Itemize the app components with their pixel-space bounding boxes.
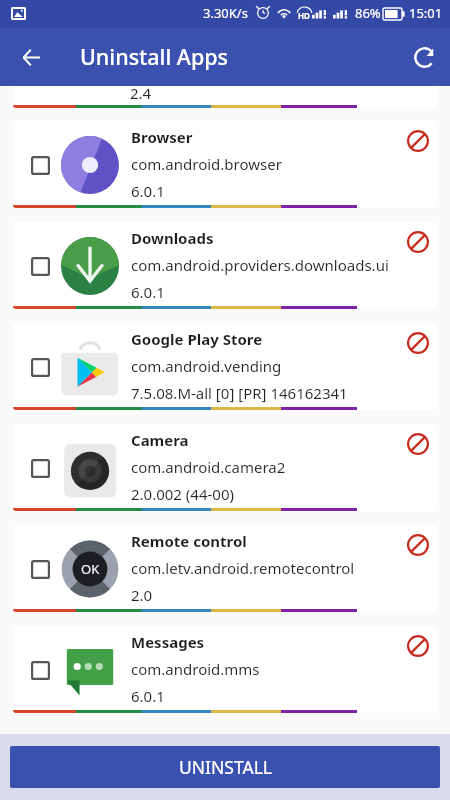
button[interactable]: Block Camera <box>400 426 436 462</box>
staticText: Messages <box>131 632 205 652</box>
staticText: 2.4 <box>130 86 152 103</box>
staticText: 2.0.002 (44-00) <box>131 484 234 504</box>
staticText: UNINSTALL <box>179 755 272 779</box>
staticText: Uninstall Apps <box>80 42 229 71</box>
button[interactable]: Back <box>11 37 51 77</box>
button[interactable]: Select Google Play Store <box>13 323 437 410</box>
staticText: 15:01 <box>409 4 443 22</box>
staticText: 6.0.1 <box>131 686 165 706</box>
button[interactable]: Select Browser <box>18 143 62 187</box>
button[interactable]: Select Downloads <box>13 222 437 309</box>
button[interactable]: Refresh <box>404 37 444 77</box>
staticText: HD <box>298 10 310 21</box>
staticText: 2.0 <box>131 585 153 605</box>
button[interactable]: Block Messages <box>400 628 436 664</box>
button[interactable]: Select Google Play Store <box>18 345 62 389</box>
button[interactable]: Block Browser <box>400 123 436 159</box>
button[interactable]: Block Downloads <box>400 224 436 260</box>
button[interactable]: Select Remote control <box>18 547 62 591</box>
button[interactable]: Block Google Play Store <box>400 325 436 361</box>
button[interactable]: Select Camera <box>18 446 62 490</box>
staticText: com.android.mms <box>131 659 260 679</box>
staticText: 86% <box>355 4 381 22</box>
staticText: 3.30K/s <box>203 4 248 22</box>
staticText: com.android.browser <box>131 154 282 174</box>
staticText: Remote control <box>131 531 247 551</box>
button[interactable]: 2.4 <box>13 86 437 108</box>
staticText: com.android.providers.downloads.ui <box>131 255 389 275</box>
staticText: com.android.vending <box>131 356 282 376</box>
button[interactable]: Select Browser <box>13 121 437 208</box>
staticText: Downloads <box>131 228 214 248</box>
button[interactable]: Select Remote control <box>13 525 437 612</box>
staticText: OK <box>81 560 100 578</box>
staticText: Camera <box>131 430 189 450</box>
button[interactable]: Select Camera <box>13 424 437 511</box>
staticText: 6.0.1 <box>131 181 165 201</box>
button[interactable]: Block Remote control <box>400 527 436 563</box>
button[interactable]: UNINSTALL <box>10 746 440 788</box>
button[interactable]: Select Downloads <box>18 244 62 288</box>
staticText: com.letv.android.remotecontrol <box>131 558 355 578</box>
button[interactable]: Select Messages <box>13 626 437 713</box>
staticText: com.android.camera2 <box>131 457 286 477</box>
staticText: 7.5.08.M-all [0] [PR] 146162341 <box>131 383 348 403</box>
staticText: Google Play Store <box>131 329 263 349</box>
staticText: 6.0.1 <box>131 282 165 302</box>
button[interactable]: Select Messages <box>18 648 62 692</box>
staticText: Browser <box>131 127 193 147</box>
